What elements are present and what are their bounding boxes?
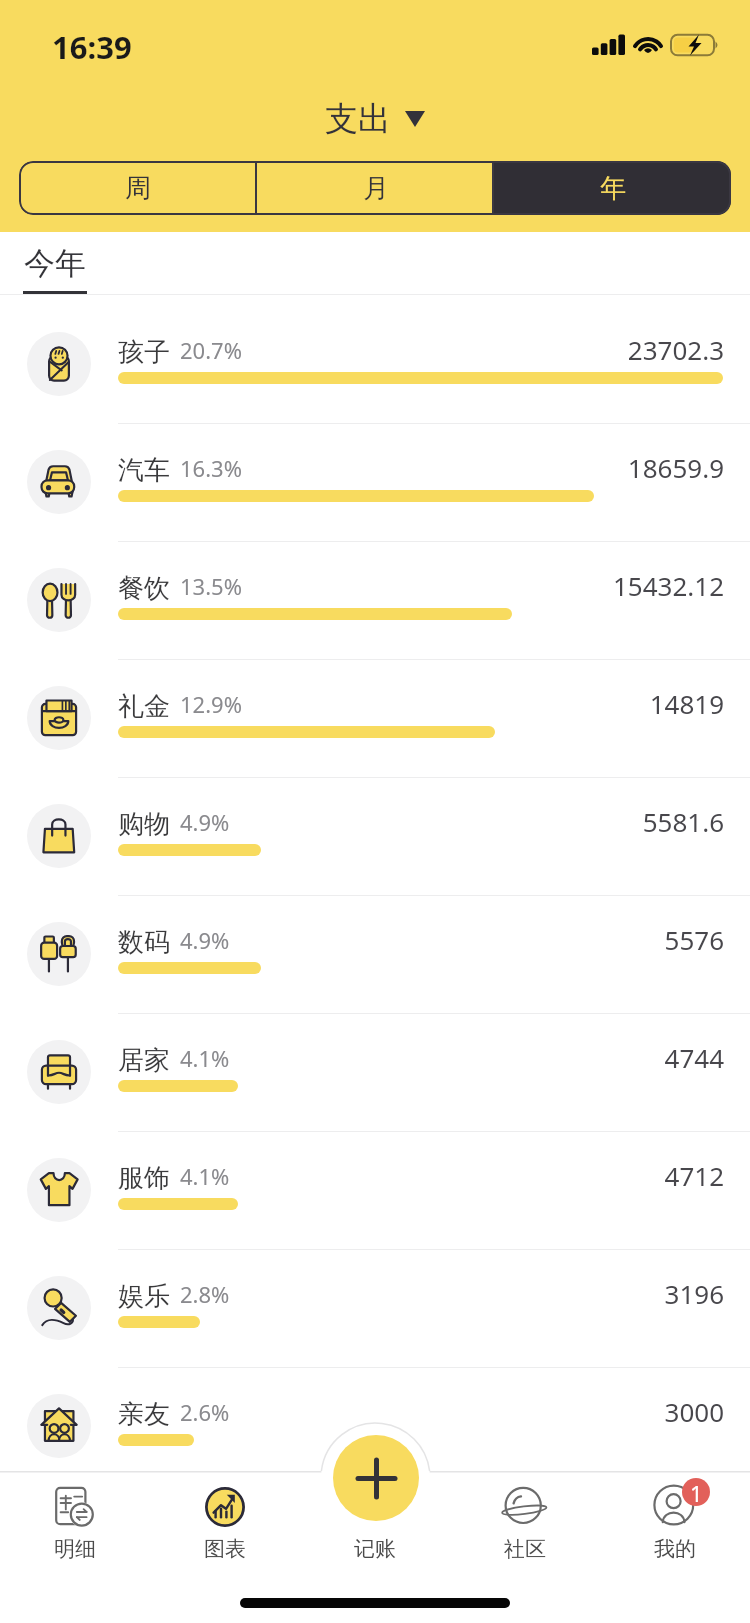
staticText: 1 [690, 1478, 703, 1506]
staticText: 2.6% [180, 1397, 230, 1427]
staticText: 居家 [118, 1044, 170, 1077]
staticText: 支出 [325, 98, 391, 140]
staticText: 12.9% [180, 689, 242, 719]
button[interactable]: 娱乐 [0, 1249, 750, 1367]
staticText: 年 [600, 172, 626, 205]
button[interactable]: 餐饮 [0, 541, 750, 659]
staticText: 社区 [504, 1536, 546, 1562]
staticText: 服饰 [118, 1162, 170, 1195]
staticText: 5581.6 [0, 804, 724, 839]
staticText: 2.8% [180, 1279, 230, 1309]
button[interactable]: 购物 [0, 777, 750, 895]
staticText: 购物 [118, 808, 170, 841]
button[interactable]: 社区 [450, 1471, 600, 1591]
button[interactable]: 图表 [150, 1471, 300, 1591]
staticText: 16:39 [52, 26, 132, 68]
button[interactable]: 今年 [8, 232, 102, 295]
staticText: 明细 [54, 1536, 96, 1562]
staticText: 5576 [0, 922, 724, 957]
staticText: 18659.9 [0, 450, 724, 485]
staticText: 记账 [354, 1536, 396, 1562]
staticText: 周 [125, 172, 151, 205]
button[interactable]: 明细 [0, 1471, 150, 1591]
staticText: 14819 [0, 686, 724, 721]
staticText: 娱乐 [118, 1280, 170, 1313]
staticText: 孩子 [118, 336, 170, 369]
staticText: 16.3% [180, 453, 242, 483]
button[interactable]: 月 [257, 161, 494, 215]
staticText: 今年 [24, 244, 86, 283]
button[interactable]: 服饰 [0, 1131, 750, 1249]
button[interactable]: 支出 [325, 98, 425, 140]
staticText: 我的 [654, 1536, 696, 1562]
staticText: 图表 [204, 1536, 246, 1562]
button[interactable]: 数码 [0, 895, 750, 1013]
button[interactable]: 孩子 [0, 305, 750, 423]
staticText: 数码 [118, 926, 170, 959]
staticText: 月 [363, 172, 389, 205]
staticText: 4712 [0, 1158, 724, 1193]
staticText: 4.1% [180, 1161, 230, 1191]
button[interactable]: 礼金 [0, 659, 750, 777]
button[interactable]: 周 [19, 161, 257, 215]
button[interactable]: 记账 [333, 1435, 419, 1521]
staticText: 20.7% [180, 335, 242, 365]
staticText: 礼金 [118, 690, 170, 723]
staticText: 4.9% [180, 807, 230, 837]
staticText: 汽车 [118, 454, 170, 487]
staticText: 3196 [0, 1276, 724, 1311]
button[interactable]: 汽车 [0, 423, 750, 541]
staticText: 餐饮 [118, 572, 170, 605]
staticText: 15432.12 [0, 568, 724, 603]
button[interactable]: 1 [600, 1471, 750, 1591]
staticText: 13.5% [180, 571, 242, 601]
staticText: 4744 [0, 1040, 724, 1075]
staticText: 23702.3 [0, 332, 724, 367]
button[interactable]: 亲友 [0, 1367, 750, 1485]
button[interactable]: 年 [494, 161, 731, 215]
staticText: 3000 [0, 1394, 724, 1429]
staticText: 4.9% [180, 925, 230, 955]
button[interactable]: 居家 [0, 1013, 750, 1131]
staticText: 亲友 [118, 1398, 170, 1431]
staticText: 4.1% [180, 1043, 230, 1073]
